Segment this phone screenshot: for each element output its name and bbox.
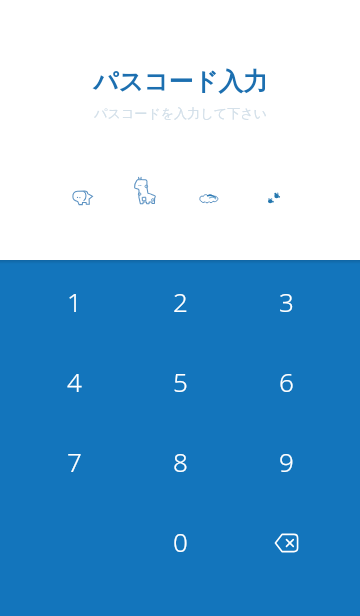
staticText: パスコードを入力して下さい [94, 105, 267, 122]
button[interactable]: 9 [233, 421, 339, 501]
button[interactable]: Backspace [233, 503, 339, 583]
staticText: 8 [173, 444, 188, 479]
button[interactable]: 1 [21, 261, 127, 341]
staticText: 7 [67, 444, 82, 479]
button[interactable]: 2 [127, 261, 233, 341]
staticText: 6 [279, 364, 294, 399]
button[interactable]: 5 [127, 341, 233, 421]
button[interactable]: 3 [233, 261, 339, 341]
staticText: 9 [279, 444, 294, 479]
staticText: 2 [173, 284, 188, 319]
button[interactable]: 7 [21, 421, 127, 501]
staticText: 0 [173, 524, 188, 559]
button[interactable]: 8 [127, 421, 233, 501]
button[interactable]: 6 [233, 341, 339, 421]
staticText: 1 [67, 284, 82, 319]
button[interactable]: 4 [21, 341, 127, 421]
staticText: 5 [173, 364, 188, 399]
staticText: 3 [279, 284, 294, 319]
staticText: パスコード入力 [93, 66, 268, 97]
staticText: 4 [67, 364, 82, 399]
button[interactable]: 0 [127, 501, 233, 581]
